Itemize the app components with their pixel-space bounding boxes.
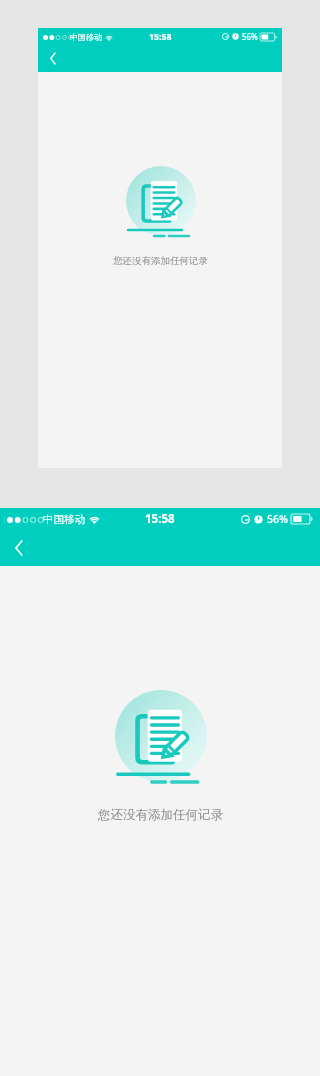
button[interactable]: Back xyxy=(0,530,38,566)
staticText: 中国移动 xyxy=(43,513,85,526)
staticText: 56% xyxy=(242,31,258,42)
staticText: 您还没有添加任何记录 xyxy=(98,807,223,823)
staticText: 您还没有添加任何记录 xyxy=(113,255,208,267)
staticText: 中国移动 xyxy=(70,32,102,42)
button[interactable]: Back xyxy=(38,45,67,72)
staticText: 15:58 xyxy=(145,511,175,527)
staticText: 56% xyxy=(267,512,288,526)
staticText: 15:58 xyxy=(149,31,172,43)
